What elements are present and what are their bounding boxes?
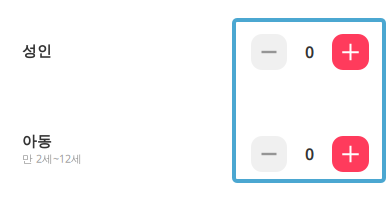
staticText: 만 2세~12세	[22, 151, 82, 166]
button[interactable]: Decrease count	[251, 34, 287, 70]
button[interactable]: Increase count	[332, 34, 369, 70]
staticText: 0	[305, 41, 314, 63]
staticText: 성인	[22, 42, 52, 60]
staticText: 0	[305, 143, 314, 165]
button[interactable]: Decrease count	[251, 136, 287, 172]
staticText: 아동	[22, 132, 52, 150]
button[interactable]: Increase count	[332, 136, 369, 172]
